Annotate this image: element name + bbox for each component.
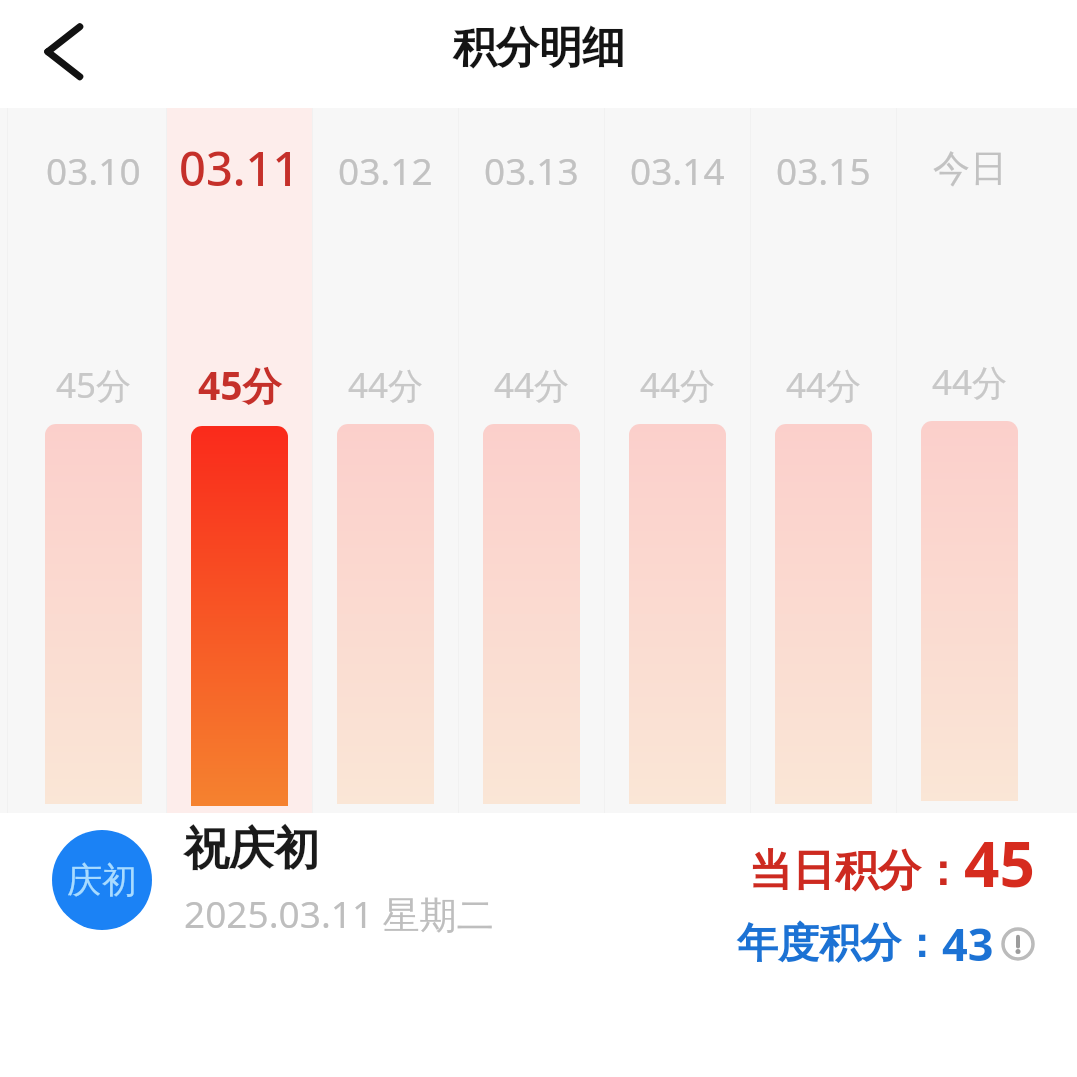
staticText: 45 bbox=[964, 821, 1035, 905]
staticText: 今日 bbox=[933, 145, 1007, 192]
staticText: 44分 bbox=[786, 361, 862, 409]
button[interactable]: 今日 bbox=[897, 108, 1042, 813]
staticText: 当日积分： bbox=[749, 844, 964, 898]
staticText: 03.10 bbox=[46, 145, 141, 195]
staticText: 43 bbox=[942, 913, 994, 974]
staticText: 44分 bbox=[494, 361, 570, 409]
button[interactable]: 03.15 bbox=[751, 108, 896, 813]
staticText: 45分 bbox=[56, 361, 132, 409]
other: Info bbox=[1001, 927, 1035, 961]
staticText: 积分明细 bbox=[453, 21, 625, 75]
staticText: 03.12 bbox=[338, 145, 433, 195]
staticText: 44分 bbox=[348, 361, 424, 409]
button[interactable]: 03.10 bbox=[21, 108, 166, 813]
staticText: 庆初 bbox=[67, 858, 137, 902]
button[interactable]: 03.14 bbox=[605, 108, 750, 813]
button[interactable]: 03.12 bbox=[313, 108, 458, 813]
staticText: 03.13 bbox=[484, 145, 579, 195]
staticText: 45分 bbox=[198, 358, 282, 411]
button[interactable]: Back bbox=[22, 16, 98, 92]
button[interactable]: 03.11 bbox=[167, 108, 312, 813]
staticText: 年度积分： bbox=[737, 918, 942, 970]
staticText: 祝庆初 bbox=[184, 821, 319, 878]
staticText: 03.14 bbox=[630, 145, 725, 195]
button[interactable]: 年度积分： bbox=[737, 913, 1035, 974]
staticText: 03.11 bbox=[179, 136, 300, 200]
button[interactable]: 03.13 bbox=[459, 108, 604, 813]
staticText: 44分 bbox=[640, 361, 716, 409]
button[interactable]: 庆初 bbox=[52, 821, 494, 939]
staticText: 03.15 bbox=[776, 145, 871, 195]
staticText: 44分 bbox=[932, 358, 1008, 406]
staticText: 2025.03.11 星期二 bbox=[184, 888, 494, 939]
